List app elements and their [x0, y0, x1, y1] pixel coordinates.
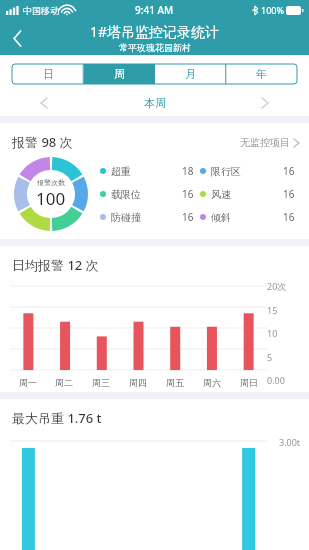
staticText: 10 — [267, 327, 278, 339]
button[interactable]: 年 — [226, 64, 297, 84]
staticText: 周三 — [92, 377, 110, 388]
staticText: 周五 — [166, 377, 184, 388]
staticText: 限行区 — [211, 165, 241, 178]
staticText: 月 — [185, 67, 196, 81]
staticText: 常平玫瑰花园新村 — [119, 42, 191, 53]
staticText: 倾斜 — [211, 211, 231, 224]
staticText: 周二 — [55, 377, 73, 388]
button[interactable]: Previous week — [32, 91, 56, 115]
button[interactable]: Next week — [253, 91, 277, 115]
staticText: 周一 — [19, 377, 37, 388]
staticText: 防碰撞 — [111, 211, 141, 224]
staticText: 18 — [182, 164, 194, 178]
staticText: 16 — [182, 210, 194, 224]
staticText: 日均报警 12 次 — [12, 256, 99, 274]
staticText: 风速 — [211, 188, 231, 201]
staticText: 16 — [283, 210, 295, 224]
staticText: 超重 — [111, 165, 131, 178]
staticText: 16 — [283, 187, 295, 201]
staticText: 1#塔吊监控记录统计 — [90, 22, 220, 41]
staticText: 16 — [182, 187, 194, 201]
staticText: 0.00 — [267, 374, 285, 386]
staticText: 9:41 AM — [135, 3, 174, 17]
staticText: 年 — [256, 67, 267, 81]
staticText: 15 — [267, 304, 278, 316]
button[interactable]: 无监控项目 — [240, 136, 299, 149]
staticText: 报警次数 — [37, 178, 65, 187]
staticText: 100% — [261, 4, 284, 16]
staticText: 报警 98 次 — [12, 133, 73, 151]
staticText: 20次 — [267, 280, 287, 292]
staticText: 100 — [36, 187, 66, 210]
button[interactable]: 日 — [12, 64, 84, 84]
staticText: 日 — [43, 67, 54, 81]
staticText: 载限位 — [111, 188, 141, 201]
staticText: 最大吊重 1.76 t — [12, 409, 102, 427]
staticText: 本周 — [144, 96, 166, 110]
staticText: 3.00t — [279, 436, 301, 448]
staticText: 16 — [283, 164, 295, 178]
staticText: 周四 — [129, 377, 147, 388]
button[interactable]: 周 — [84, 64, 155, 84]
staticText: 中国移动 — [23, 5, 59, 16]
button[interactable]: 月 — [155, 64, 226, 84]
button[interactable]: Back — [0, 21, 34, 55]
staticText: 周六 — [203, 377, 221, 388]
staticText: 无监控项目 — [240, 136, 290, 149]
button[interactable]: 本周 — [144, 96, 166, 110]
staticText: 5 — [267, 351, 273, 363]
staticText: 周日 — [240, 377, 258, 388]
staticText: 周 — [114, 67, 125, 81]
